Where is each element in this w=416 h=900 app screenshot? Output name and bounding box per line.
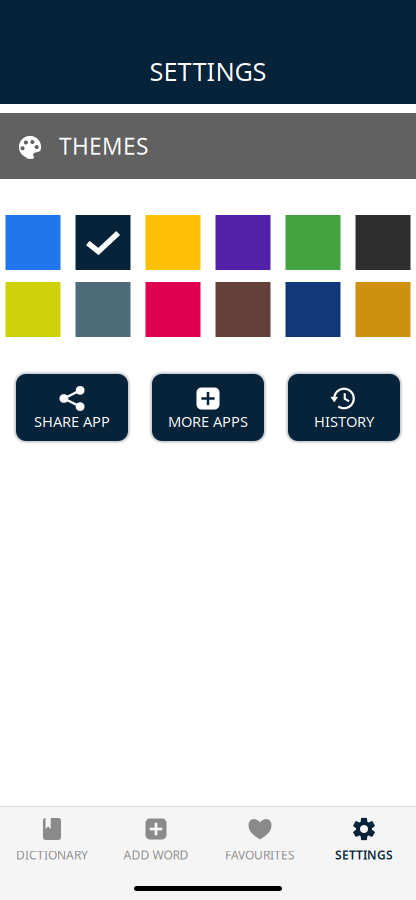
button[interactable]: SHARE APP: [16, 374, 128, 441]
staticText: SHARE APP: [34, 411, 110, 431]
button[interactable]: HISTORY: [288, 374, 400, 441]
staticText: DICTIONARY: [16, 847, 88, 863]
button[interactable]: FAVOURITES: [208, 807, 312, 865]
staticText: SETTINGS: [149, 54, 266, 88]
staticText: MORE APPS: [168, 411, 248, 431]
button[interactable]: DICTIONARY: [0, 807, 104, 865]
staticText: FAVOURITES: [225, 847, 295, 863]
staticText: ADD WORD: [123, 847, 188, 863]
button[interactable]: ADD WORD: [104, 807, 208, 865]
staticText: SETTINGS: [335, 847, 393, 863]
staticText: HISTORY: [314, 411, 374, 431]
staticText: THEMES: [59, 131, 148, 161]
button[interactable]: MORE APPS: [152, 374, 264, 441]
button[interactable]: SETTINGS: [312, 807, 416, 865]
button[interactable]: Theme colour: [75, 215, 130, 270]
